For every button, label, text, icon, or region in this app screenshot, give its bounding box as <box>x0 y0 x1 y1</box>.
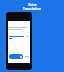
staticText: Translation <box>23 7 41 11</box>
button[interactable]: Record <box>9 54 23 59</box>
staticText: Voice <box>28 3 37 7</box>
